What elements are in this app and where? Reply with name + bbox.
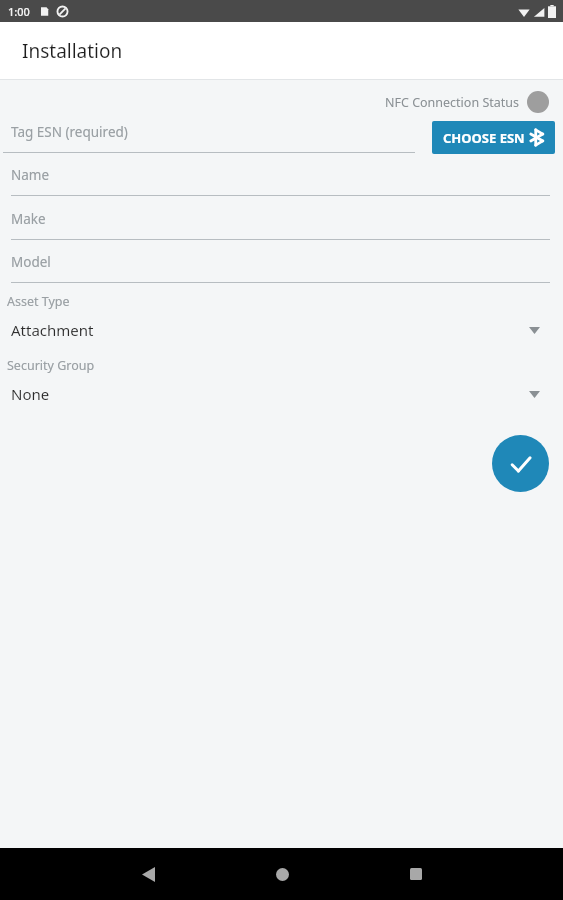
button[interactable]: NFC connection status indicator	[527, 91, 549, 113]
button[interactable]: CHOOSE ESN	[432, 121, 555, 154]
staticText: None	[11, 384, 529, 404]
button[interactable]: Recent apps	[396, 854, 436, 894]
button[interactable]: Save installation	[492, 435, 549, 492]
button[interactable]: Security Group	[0, 357, 563, 413]
button[interactable]: Asset Type	[0, 293, 563, 349]
staticText: 1:00	[8, 4, 30, 19]
staticText: Name	[11, 166, 50, 184]
staticText: Installation	[22, 38, 123, 64]
staticText: CHOOSE ESN	[443, 129, 525, 147]
button[interactable]: Make	[0, 210, 563, 240]
staticText: Tag ESN (required)	[11, 123, 128, 141]
staticText: Model	[11, 253, 51, 271]
button[interactable]: Name	[0, 166, 563, 196]
staticText: Security Group	[7, 357, 95, 374]
button[interactable]: Model	[0, 253, 563, 283]
button[interactable]: Tag ESN (required)	[0, 123, 415, 153]
button[interactable]: Home	[262, 854, 302, 894]
staticText: Attachment	[11, 320, 529, 340]
staticText: NFC Connection Status	[385, 94, 519, 111]
staticText: Make	[11, 210, 46, 228]
staticText: Asset Type	[7, 293, 70, 310]
button[interactable]: Back	[128, 854, 168, 894]
